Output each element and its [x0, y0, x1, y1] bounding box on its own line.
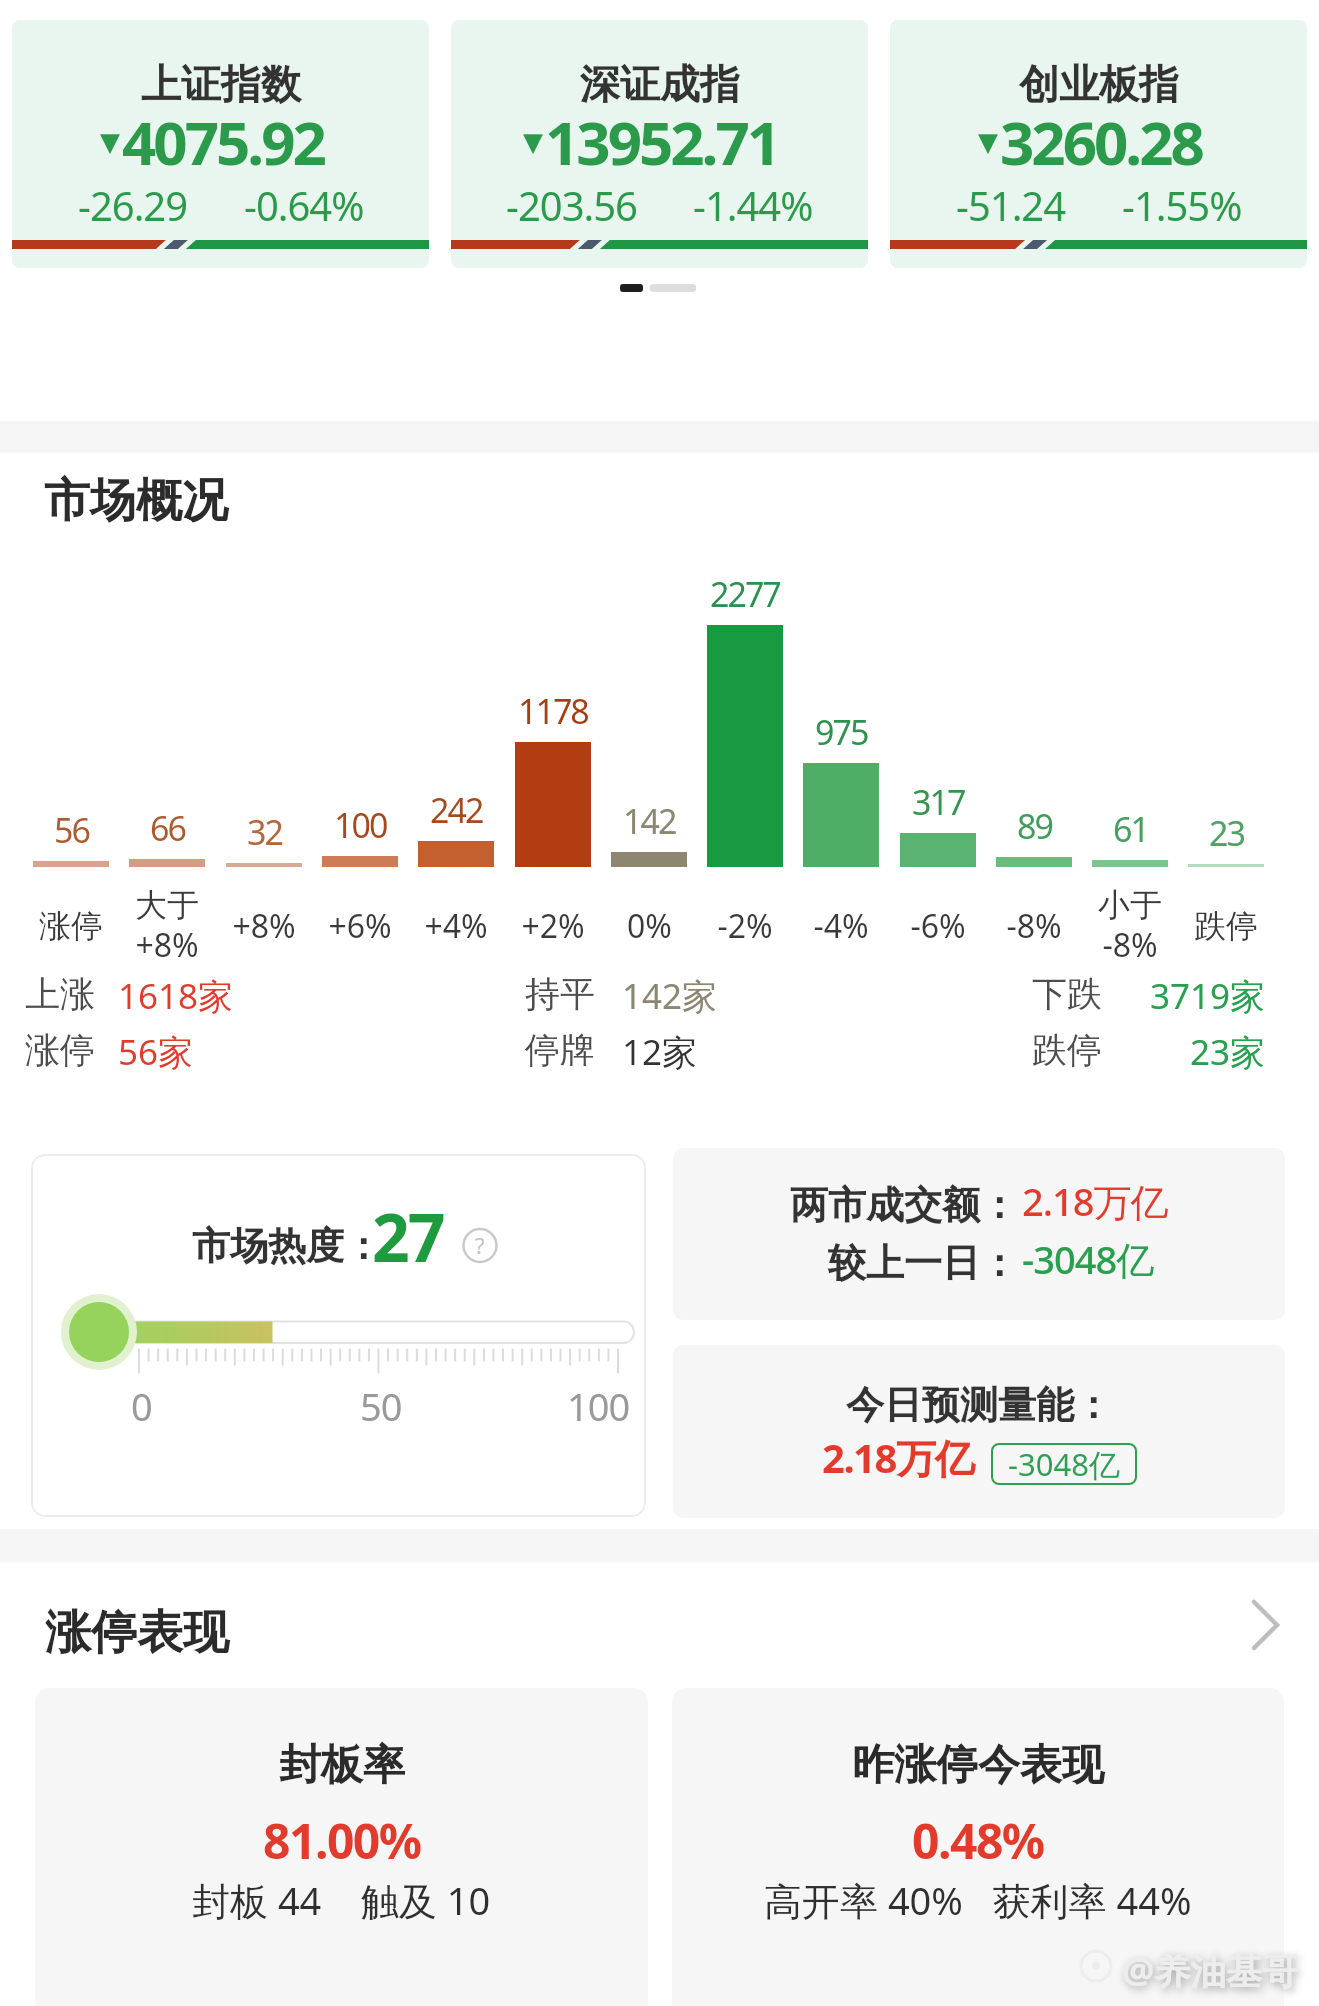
staticText: +8%: [232, 904, 296, 948]
staticText: 跌停: [1194, 906, 1258, 946]
staticText: -203.56: [506, 178, 637, 232]
staticText: 高开率 40% 获利率 44%: [764, 1874, 1192, 1926]
button[interactable]: [31, 1154, 646, 1517]
button[interactable]: 上证指数: [12, 20, 429, 268]
staticText: 小于 -8%: [1098, 885, 1162, 967]
staticText: +2%: [521, 904, 585, 948]
staticText: +4%: [424, 904, 488, 948]
staticText: 50: [360, 1380, 402, 1432]
staticText: 涨停: [25, 1028, 95, 1072]
staticText: 市场热度：: [192, 1222, 382, 1270]
staticText: 27: [372, 1191, 444, 1281]
staticText: -3048亿: [1008, 1443, 1120, 1485]
staticText: 2277: [710, 571, 780, 617]
staticText: ▼: [978, 127, 998, 157]
staticText: -2%: [717, 904, 773, 948]
staticText: 100: [334, 802, 387, 848]
staticText: 涨停表现: [45, 1604, 229, 1662]
staticText: 封板 44 触及 10: [192, 1874, 491, 1926]
staticText: 深证成指: [580, 59, 740, 109]
staticText: 创业板指: [1019, 59, 1179, 109]
staticText: 100: [567, 1380, 630, 1432]
staticText: -8%: [1006, 904, 1062, 948]
staticText: 89: [1017, 803, 1052, 849]
staticText: -1.44%: [693, 178, 813, 232]
staticText: @养油基哥: [1122, 1946, 1299, 1995]
staticText: 12家: [622, 1028, 698, 1076]
staticText: 3260.28: [1000, 101, 1202, 183]
staticText: 142家: [622, 972, 718, 1020]
staticText: 242: [430, 787, 483, 833]
staticText: ?: [475, 1230, 485, 1260]
staticText: 较上一日：: [828, 1239, 1018, 1287]
button[interactable]: [0, 1580, 1319, 1675]
staticText: 2.18万亿: [1022, 1175, 1168, 1227]
staticText: 上涨: [25, 972, 95, 1016]
staticText: 0: [131, 1380, 152, 1432]
staticText: 32: [247, 809, 282, 855]
staticText: 317: [912, 779, 965, 825]
button[interactable]: [672, 1688, 1284, 2006]
staticText: ▼: [100, 127, 120, 157]
staticText: 涨停: [39, 906, 103, 946]
staticText: 封板率: [279, 1739, 405, 1792]
button[interactable]: 深证成指: [451, 20, 868, 268]
staticText: 81.00%: [263, 1808, 421, 1873]
staticText: 23: [1209, 810, 1244, 856]
staticText: -26.29: [78, 178, 188, 232]
staticText: ▼: [523, 127, 543, 157]
staticText: 两市成交额：: [790, 1181, 1018, 1229]
staticText: 大于 +8%: [135, 885, 199, 967]
staticText: -3048亿: [1022, 1233, 1154, 1285]
staticText: 0%: [627, 904, 672, 948]
staticText: 跌停: [1032, 1028, 1102, 1072]
staticText: 23家: [1190, 1028, 1266, 1076]
staticText: 4075.92: [122, 101, 324, 183]
button[interactable]: [673, 1345, 1285, 1518]
staticText: 3719家: [1150, 972, 1266, 1020]
staticText: -1.55%: [1122, 178, 1242, 232]
staticText: -51.24: [956, 178, 1066, 232]
staticText: 0.48%: [912, 1808, 1044, 1873]
staticText: 上证指数: [141, 59, 301, 109]
staticText: 1618家: [118, 972, 234, 1020]
staticText: 975: [815, 709, 868, 755]
staticText: 142: [623, 798, 676, 844]
staticText: -4%: [813, 904, 869, 948]
button[interactable]: [673, 1148, 1285, 1320]
staticText: 13952.71: [545, 101, 779, 183]
staticText: 2.18万亿: [822, 1430, 973, 1485]
staticText: 持平: [525, 972, 595, 1016]
staticText: 61: [1113, 806, 1148, 852]
staticText: 66: [150, 805, 185, 851]
staticText: 市场概况: [44, 472, 228, 530]
staticText: 停牌: [525, 1028, 595, 1072]
staticText: 下跌: [1032, 972, 1102, 1016]
staticText: 今日预测量能：: [846, 1381, 1112, 1429]
button[interactable]: [35, 1688, 648, 2006]
staticText: 昨涨停今表现: [852, 1739, 1104, 1792]
staticText: 56: [54, 807, 89, 853]
staticText: 1178: [518, 688, 588, 734]
button[interactable]: 创业板指: [890, 20, 1307, 268]
staticText: -0.64%: [244, 178, 364, 232]
staticText: -6%: [910, 904, 966, 948]
staticText: 56家: [118, 1028, 194, 1076]
staticText: +6%: [328, 904, 392, 948]
